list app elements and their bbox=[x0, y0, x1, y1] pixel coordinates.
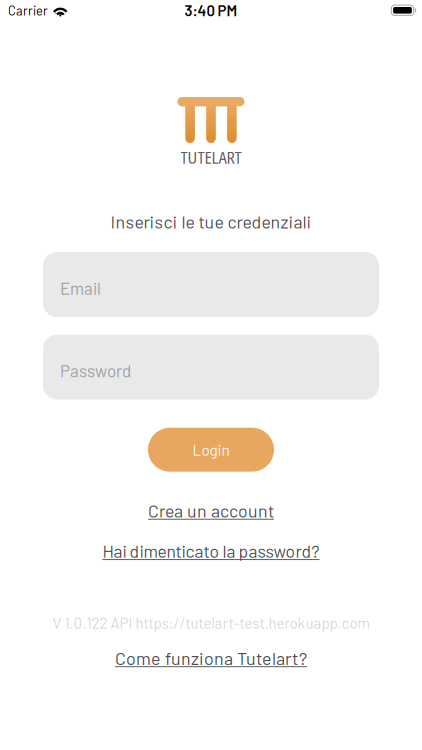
staticText: Password bbox=[60, 360, 131, 381]
staticText: TUTELART bbox=[180, 146, 241, 168]
staticText: V 1.0.122 API https://tutelart-test.hero… bbox=[52, 614, 369, 632]
staticText: Come funziona Tutelart? bbox=[115, 647, 307, 668]
staticText: Crea un account bbox=[148, 500, 274, 521]
staticText: Hai dimenticato la password? bbox=[102, 540, 319, 561]
staticText: 3:40 PM bbox=[184, 1, 237, 19]
button[interactable]: Login bbox=[148, 428, 274, 472]
button[interactable]: Hai dimenticato la password? bbox=[102, 540, 319, 561]
staticText: Email bbox=[60, 278, 101, 298]
button[interactable]: Crea un account bbox=[148, 500, 274, 521]
staticText: Login bbox=[192, 440, 229, 459]
staticText: Carrier bbox=[8, 3, 48, 18]
staticText: Inserisci le tue credenziali bbox=[110, 211, 311, 232]
button[interactable]: Come funziona Tutelart? bbox=[115, 647, 307, 668]
